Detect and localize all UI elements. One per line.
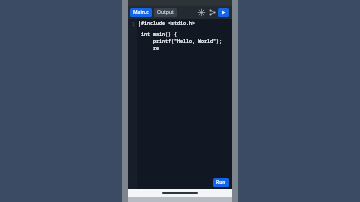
- staticText: Main.c: [133, 9, 149, 16]
- button[interactable]: Run: [213, 178, 229, 187]
- staticText: printf("Hello, World");: [141, 38, 223, 45]
- button[interactable]: Share: [207, 7, 218, 18]
- staticText: Output: [157, 9, 174, 16]
- staticText: #include <stdio.h>: [141, 20, 196, 27]
- button[interactable]: Output: [154, 8, 177, 17]
- staticText: re: [141, 45, 160, 52]
- button[interactable]: Toggle theme: [196, 7, 207, 18]
- staticText: 1: [132, 21, 135, 27]
- button[interactable]: Main.c: [130, 8, 152, 17]
- staticText: int main() {: [141, 31, 178, 38]
- button[interactable]: Run: [218, 8, 229, 17]
- staticText: Run: [216, 179, 226, 186]
